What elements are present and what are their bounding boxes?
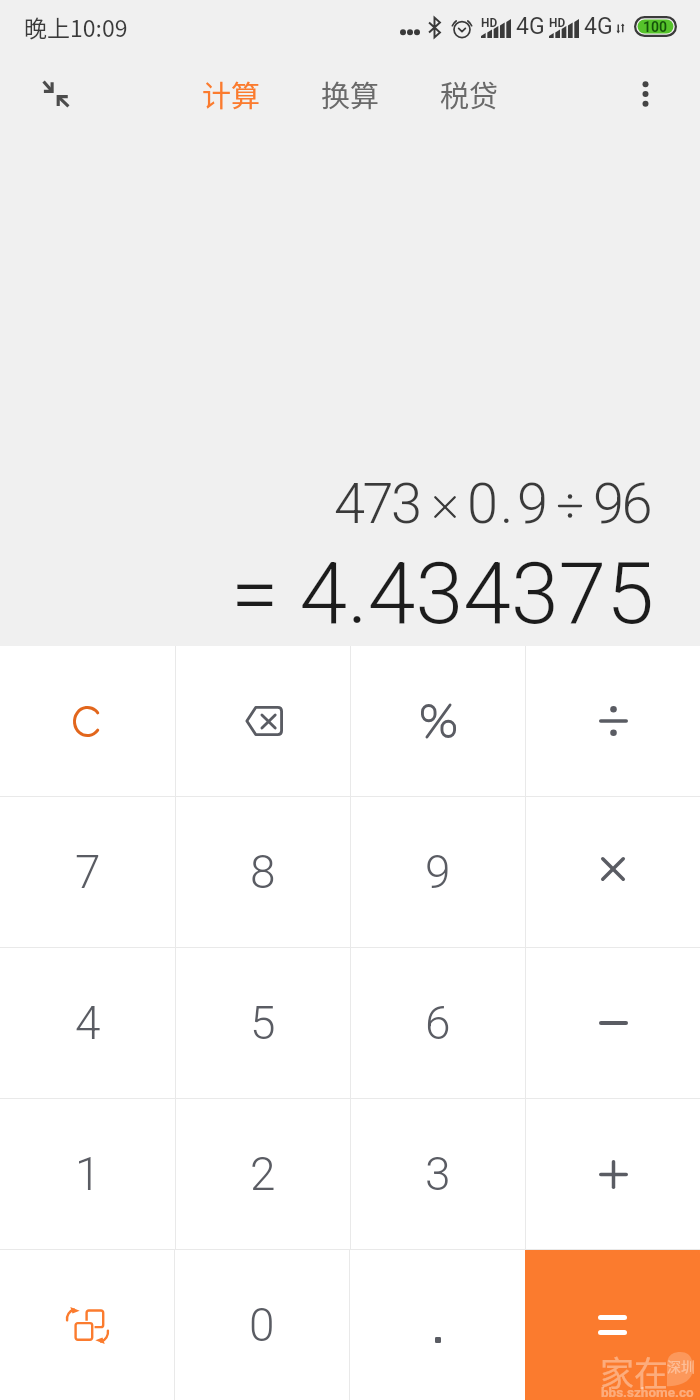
staticText: 9 [517,471,546,537]
staticText: 晚上10:09 [24,10,128,43]
button[interactable]: 6 [351,948,525,1098]
button[interactable] [351,646,525,796]
button[interactable]: Unit converter [0,1250,174,1400]
staticText: 1 [75,1147,101,1201]
staticText: 5 [250,996,276,1050]
staticText: . [500,471,511,537]
staticText: 96 [593,471,650,537]
staticText: 473 [334,471,420,537]
staticText: 深圳 [667,1356,695,1376]
button[interactable]: Decimal point [350,1250,525,1400]
button[interactable]: 0 [175,1250,349,1400]
staticText: 6 [425,996,451,1050]
button[interactable]: 7 [0,797,175,947]
button[interactable] [526,646,700,796]
staticText: 家在 [600,1347,668,1396]
button[interactable]: 换算 [308,66,392,122]
staticText: 7 [75,845,101,899]
button[interactable]: 9 [351,797,525,947]
staticText: HD [481,16,498,30]
button[interactable]: Clear [0,646,175,796]
staticText: 3 [425,1147,451,1201]
button[interactable]: Equals [525,1250,700,1400]
staticText: 4G [584,13,613,40]
button[interactable]: Collapse [32,70,80,118]
button[interactable]: 5 [176,948,350,1098]
staticText: 4G [516,13,545,40]
button[interactable]: 8 [176,797,350,947]
button[interactable]: More options [621,70,669,118]
staticText: 税贷 [440,73,499,115]
staticText: 8 [250,845,276,899]
staticText: 4 [75,996,101,1050]
button[interactable] [526,797,700,947]
staticText: 换算 [321,73,380,115]
staticText: 0 [467,471,496,537]
button[interactable]: Backspace [176,646,350,796]
staticText: 9 [425,845,451,899]
staticText: 100 [643,19,668,35]
staticText: bbs.szhome.com [601,1384,700,1400]
staticText: = 4.434375 [231,543,654,644]
staticText: HD [549,16,566,30]
button[interactable]: 税贷 [427,66,511,122]
staticText: 0 [249,1298,275,1352]
button[interactable]: 4 [0,948,175,1098]
button[interactable]: 计算 [189,66,273,122]
button[interactable]: 2 [176,1099,350,1249]
button[interactable] [526,1099,700,1249]
button[interactable]: 3 [351,1099,525,1249]
button[interactable]: 1 [0,1099,175,1249]
staticText: 2 [250,1147,276,1201]
button[interactable] [526,948,700,1098]
staticText: 计算 [202,73,261,115]
